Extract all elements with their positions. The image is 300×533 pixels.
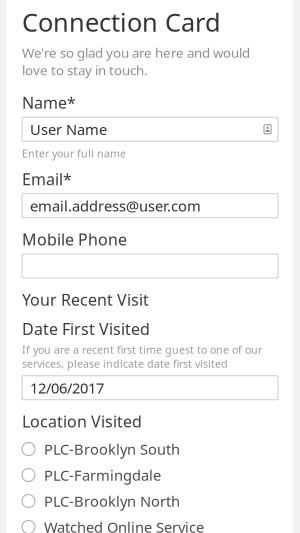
staticText: Date First Visited <box>22 318 150 339</box>
staticText: We're so glad you are here and would lov… <box>22 44 250 79</box>
staticText: Location Visited <box>22 411 142 432</box>
staticText: Watched Online Service <box>44 517 204 533</box>
button[interactable]: PLC-Brooklyn North <box>22 489 278 513</box>
staticText: Connection Card <box>22 5 221 39</box>
staticText: Enter your full name <box>22 146 126 160</box>
staticText: User Name <box>30 119 107 139</box>
staticText: Email* <box>22 168 72 190</box>
staticText: 12/06/2017 <box>30 378 104 397</box>
button[interactable]: Watched Online Service <box>22 515 278 533</box>
staticText: Mobile Phone <box>22 229 127 250</box>
staticText: Your Recent Visit <box>22 289 149 310</box>
button[interactable]: Choose contact <box>264 125 278 134</box>
staticText: email.address@user.com <box>30 196 201 215</box>
staticText: PLC-Brooklyn South <box>44 439 180 459</box>
button[interactable]: PLC-Farmingdale <box>22 463 278 487</box>
button[interactable]: PLC-Brooklyn South <box>22 437 278 461</box>
staticText: Name* <box>22 92 76 113</box>
staticText: PLC-Brooklyn North <box>44 491 180 511</box>
staticText: PLC-Farmingdale <box>44 465 161 485</box>
staticText: If you are a recent first time guest to … <box>22 342 262 371</box>
